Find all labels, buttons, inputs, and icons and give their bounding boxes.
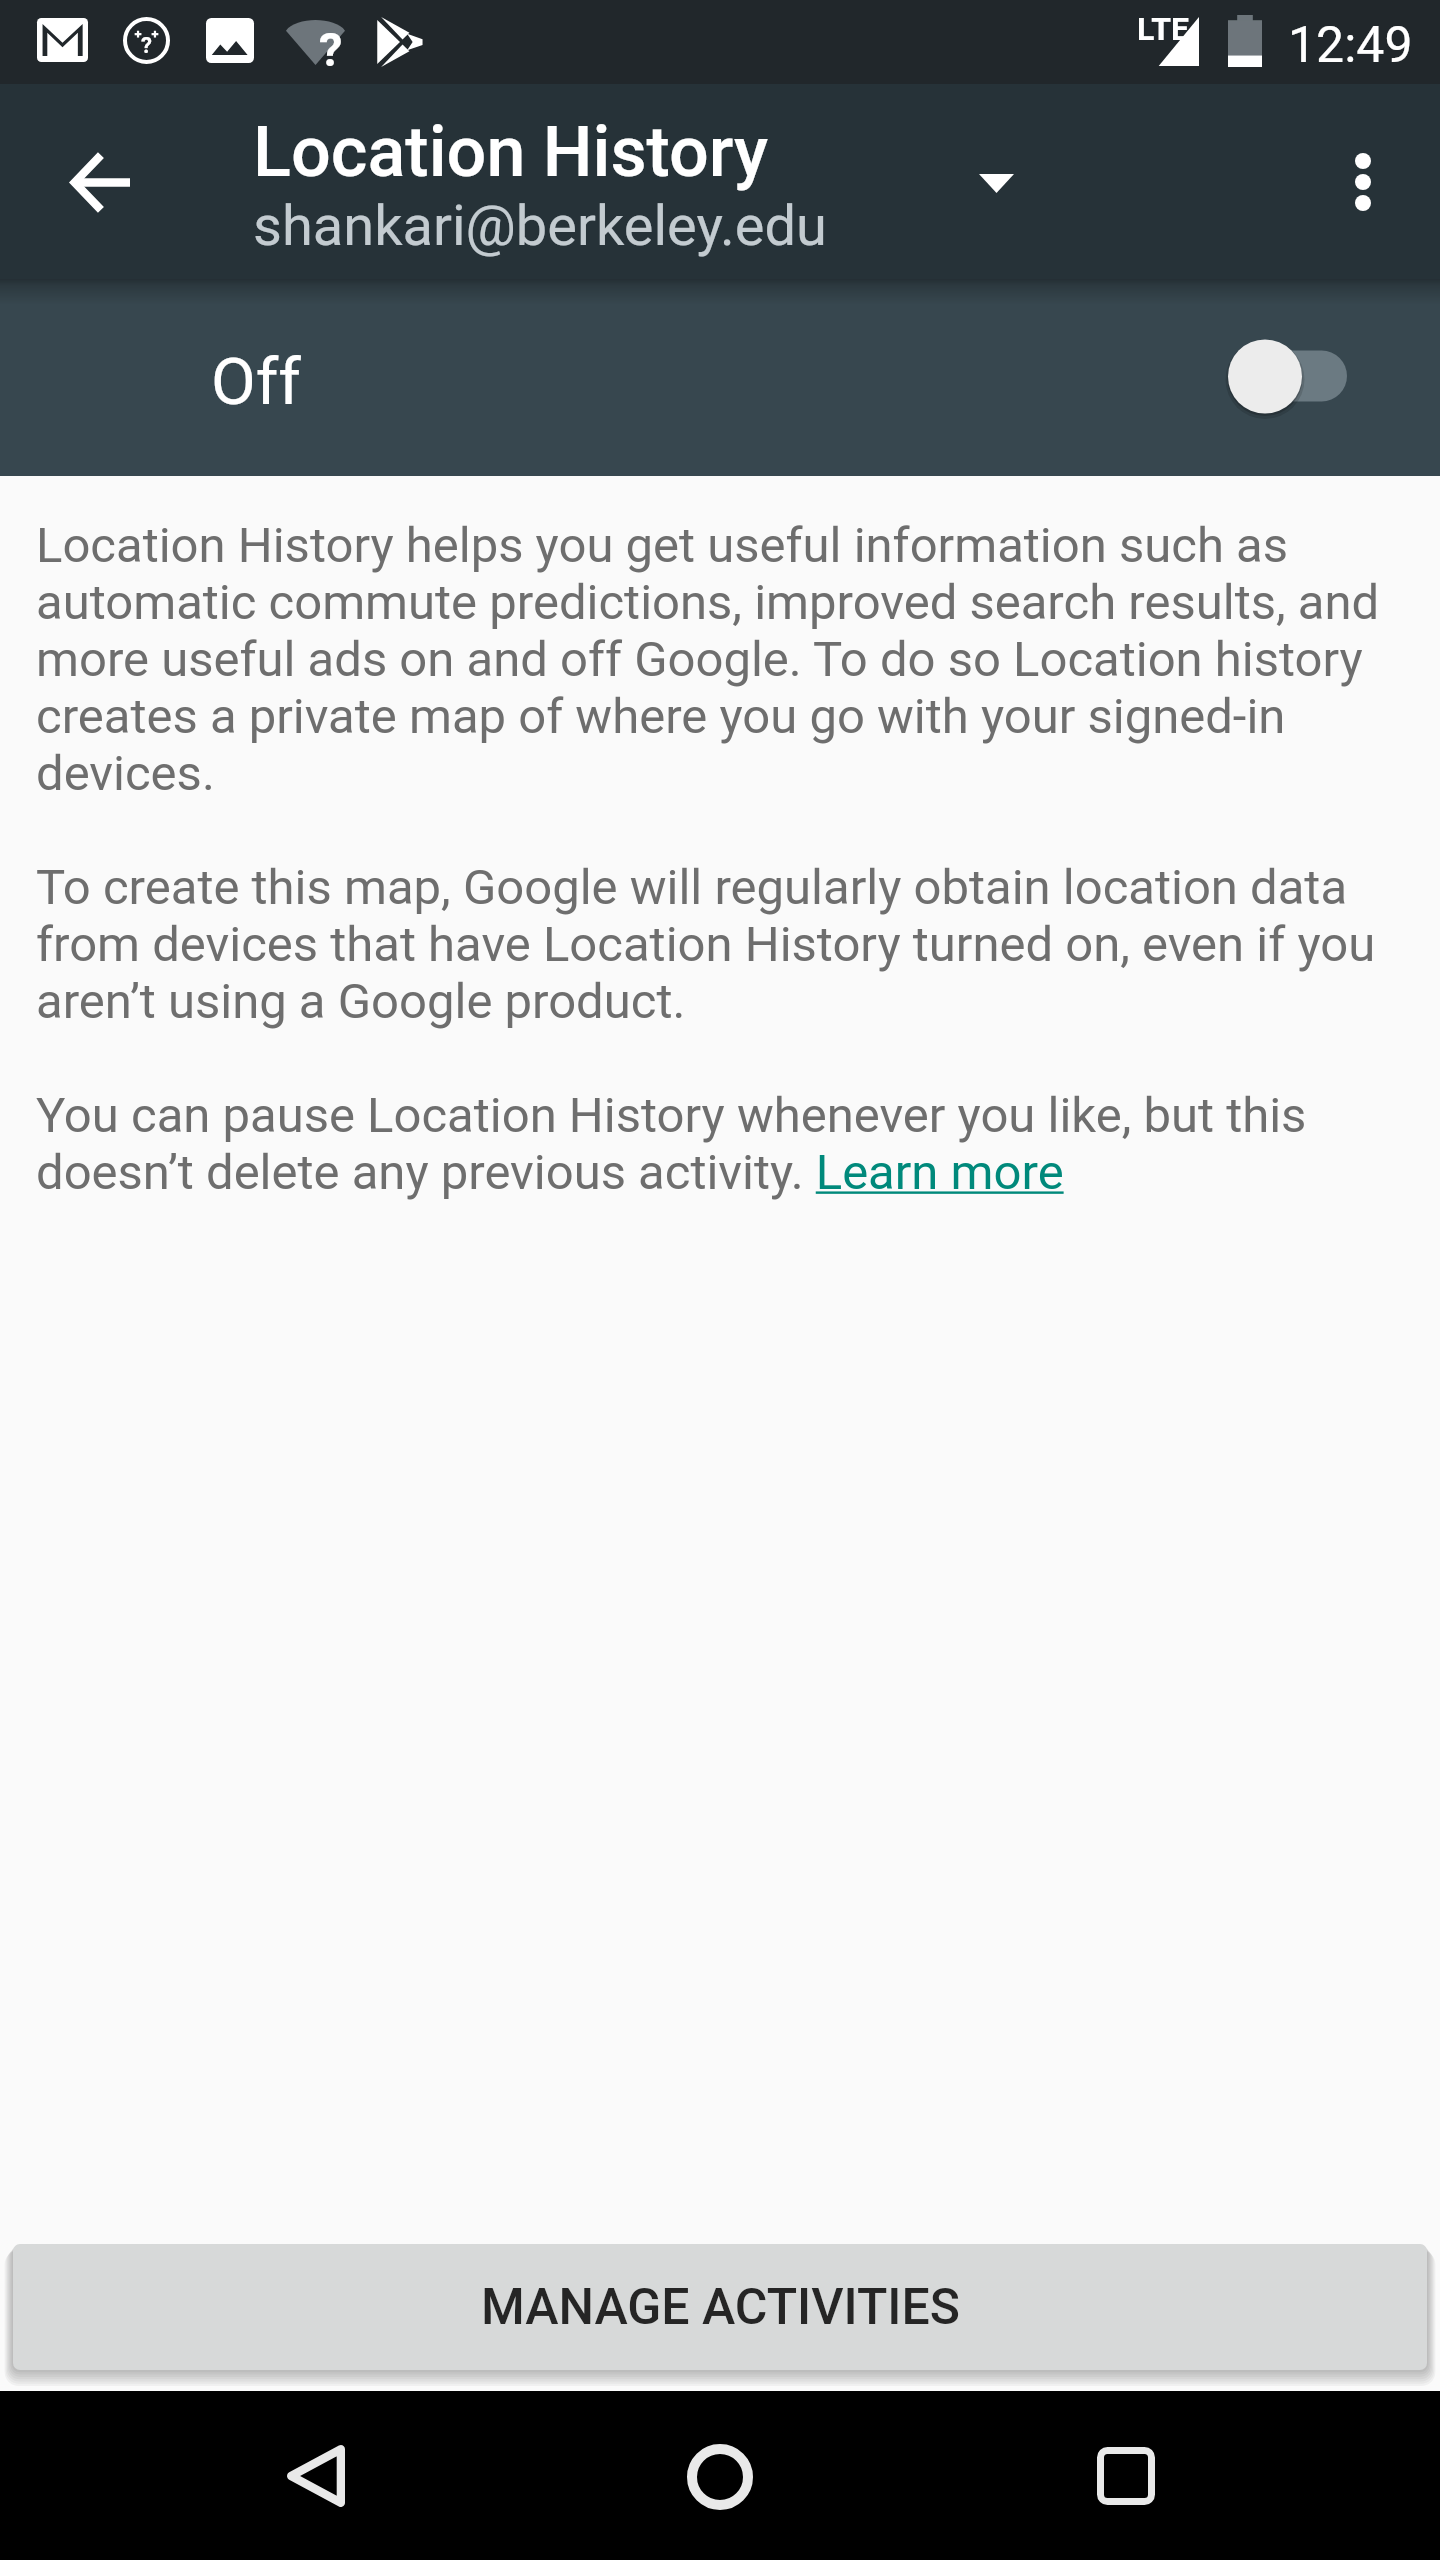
button[interactable]: Home xyxy=(660,2417,780,2537)
button[interactable]: Navigate up xyxy=(42,127,154,239)
button[interactable]: Back xyxy=(256,2416,376,2536)
button[interactable]: Recent apps xyxy=(1066,2416,1186,2536)
staticText: Location History helps you get useful in… xyxy=(36,517,1402,802)
staticText: To create this map, Google will regularl… xyxy=(36,859,1402,1030)
button[interactable]: Location History off xyxy=(1216,328,1359,424)
button[interactable]: Off xyxy=(0,279,1440,476)
staticText: Off xyxy=(211,344,301,420)
staticText: 12:49 xyxy=(1288,16,1413,75)
staticText: Location History xyxy=(253,111,769,193)
staticText: shankari@berkeley.edu xyxy=(253,193,827,259)
staticText: ? xyxy=(141,33,152,59)
staticText: MANAGE ACTIVITIES xyxy=(481,2278,960,2337)
staticText: LTE xyxy=(1137,10,1189,48)
button[interactable]: Switch account xyxy=(940,127,1052,239)
button[interactable]: MANAGE ACTIVITIES xyxy=(13,2244,1427,2370)
staticText: ? xyxy=(319,22,343,77)
staticText: You can pause Location History whenever … xyxy=(36,1087,1402,1201)
button[interactable]: Learn more xyxy=(812,1152,1068,1200)
button[interactable]: More options xyxy=(1307,127,1419,239)
